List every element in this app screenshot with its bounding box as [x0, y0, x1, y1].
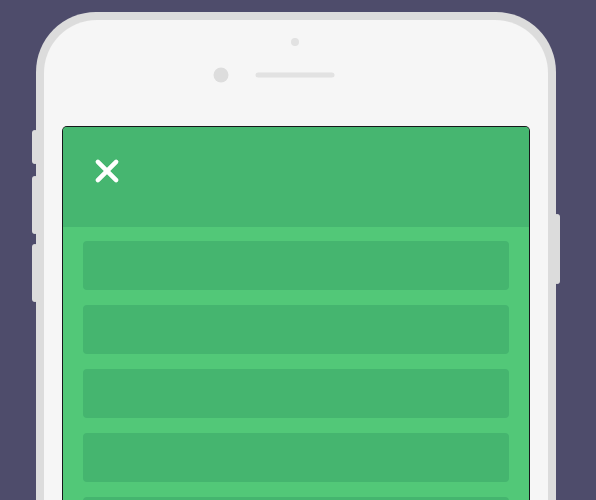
button[interactable]: Close [89, 153, 125, 189]
